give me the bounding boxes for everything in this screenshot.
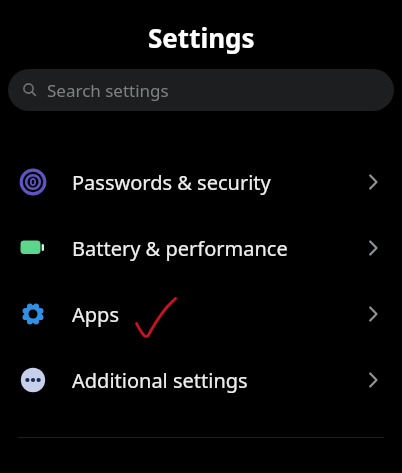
staticText: Additional settings [72,367,248,394]
staticText: Settings [148,20,255,55]
staticText: Apps [72,301,119,328]
button[interactable]: Apps [0,281,402,347]
button[interactable]: Battery & performance [0,215,402,281]
staticText: Battery & performance [72,235,288,262]
staticText: Search settings [47,79,169,102]
button[interactable]: Passwords & security [0,149,402,215]
staticText: Passwords & security [72,169,271,196]
button[interactable]: Additional settings [0,347,402,413]
button[interactable]: Search settings [8,69,394,111]
